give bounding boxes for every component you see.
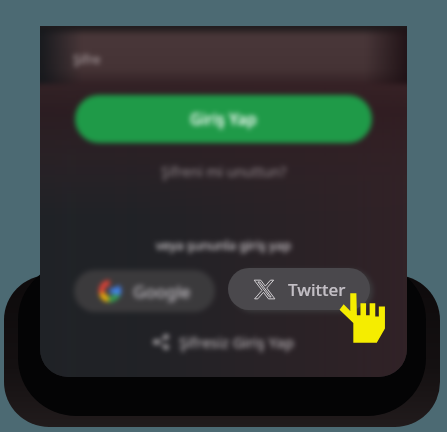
- staticText: Şifresiz Giriş Yap: [179, 332, 294, 352]
- button[interactable]: Giriş Yap: [75, 95, 372, 143]
- staticText: Google: [133, 280, 191, 303]
- button[interactable]: Şifreni mi unuttun?: [161, 162, 287, 181]
- staticText: Giriş Yap: [190, 108, 257, 130]
- staticText: Şifre: [73, 50, 101, 68]
- button[interactable]: Şifresiz Giriş Yap: [40, 332, 407, 352]
- button[interactable]: Twitter: [228, 268, 370, 310]
- other: Pointer: [337, 290, 388, 345]
- staticText: Twitter: [292, 280, 348, 303]
- staticText: Twitter: [288, 278, 346, 301]
- button[interactable]: Şifre: [40, 28, 407, 84]
- button[interactable]: Google: [74, 270, 215, 312]
- button[interactable]: Twitter: [232, 270, 373, 312]
- staticText: veya şununla giriş yap: [156, 236, 291, 254]
